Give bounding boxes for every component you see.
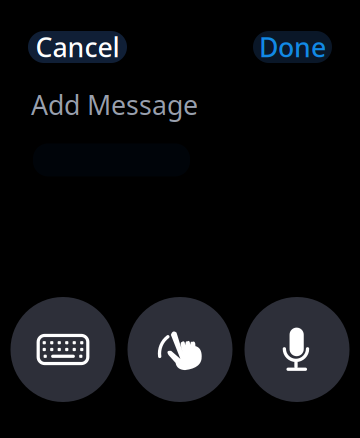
staticText: Cancel: [35, 29, 119, 65]
staticText: Add Message: [31, 87, 198, 122]
button[interactable]: Dictate: [244, 297, 349, 402]
button[interactable]: Done: [253, 31, 332, 63]
button[interactable]: Keyboard: [10, 297, 115, 402]
button[interactable]: Scribble: [127, 297, 232, 402]
staticText: Done: [259, 29, 326, 65]
button[interactable]: Cancel: [28, 31, 127, 63]
